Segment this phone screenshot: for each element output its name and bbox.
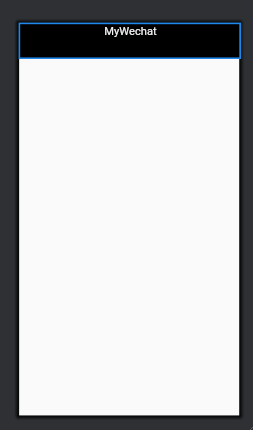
staticText: MyWechat xyxy=(104,25,157,38)
button[interactable]: MyWechat xyxy=(19,23,239,58)
